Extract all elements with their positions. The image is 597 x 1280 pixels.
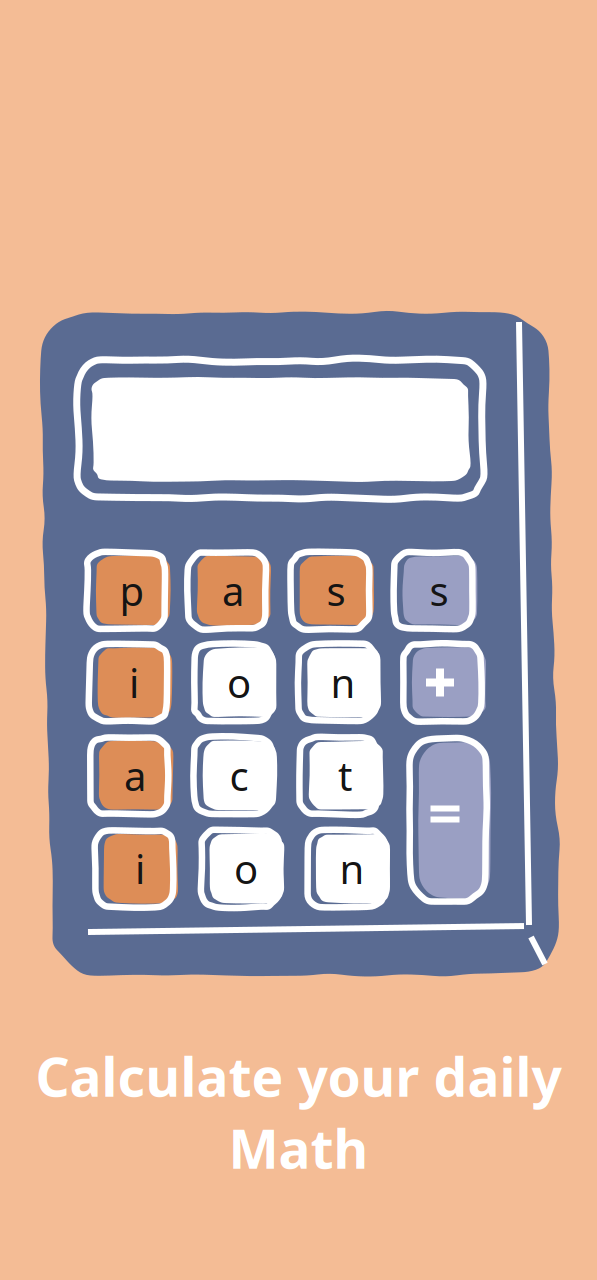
button[interactable]: c bbox=[194, 737, 282, 818]
staticText: Calculate your daily bbox=[35, 1041, 561, 1111]
button[interactable]: t bbox=[300, 737, 388, 818]
button[interactable]: plus bbox=[403, 644, 491, 725]
staticText: c bbox=[229, 749, 248, 802]
staticText: p bbox=[119, 564, 144, 617]
staticText: n bbox=[330, 656, 355, 709]
staticText: o bbox=[227, 656, 251, 709]
button[interactable]: s bbox=[291, 552, 379, 633]
staticText: s bbox=[326, 564, 345, 617]
button[interactable]: equals bbox=[410, 738, 496, 906]
button[interactable]: o bbox=[194, 644, 282, 725]
button[interactable]: p bbox=[87, 552, 175, 633]
staticText: a bbox=[124, 749, 146, 802]
staticText: o bbox=[234, 842, 258, 895]
button[interactable]: a bbox=[188, 552, 276, 633]
staticText: i bbox=[129, 656, 139, 709]
button[interactable]: n bbox=[307, 830, 395, 911]
staticText: n bbox=[339, 842, 364, 895]
staticText: i bbox=[135, 842, 145, 895]
button[interactable]: o bbox=[201, 830, 289, 911]
button[interactable]: n bbox=[298, 644, 386, 725]
button[interactable]: a bbox=[90, 737, 178, 818]
button[interactable]: i bbox=[95, 830, 183, 911]
button[interactable]: s bbox=[394, 552, 482, 633]
button[interactable]: i bbox=[89, 644, 177, 725]
staticText: Math bbox=[228, 1113, 368, 1183]
staticText: t bbox=[338, 749, 352, 802]
staticText: s bbox=[429, 564, 448, 617]
staticText: a bbox=[222, 564, 244, 617]
